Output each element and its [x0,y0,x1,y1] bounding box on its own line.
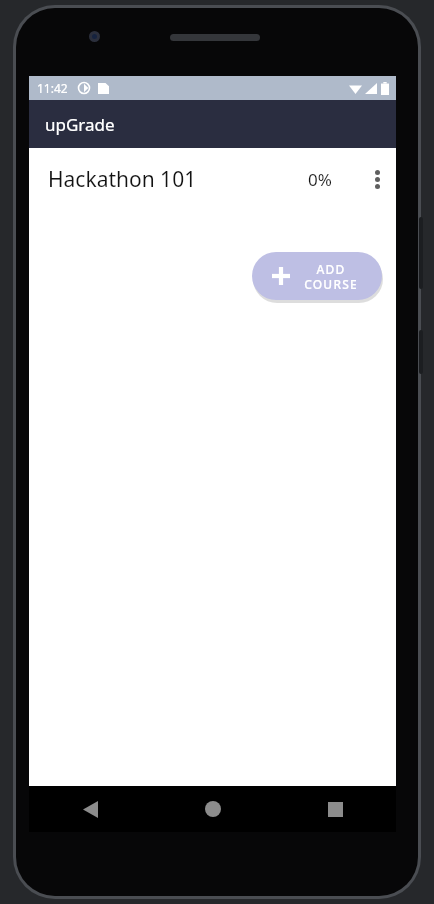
staticText: 0% [308,168,332,191]
button[interactable]: More options [360,162,394,196]
staticText: Hackathon 101 [48,165,197,194]
button[interactable]: ADD COURSE [252,252,382,300]
button[interactable]: Home [152,786,274,832]
staticText: upGrade [45,113,115,136]
button[interactable]: Recent apps [274,786,396,832]
button[interactable]: Hackathon 101 [29,148,396,210]
staticText: ADD COURSE [304,261,358,292]
staticText: 11:42 [37,80,68,96]
button[interactable]: Back [29,786,152,832]
